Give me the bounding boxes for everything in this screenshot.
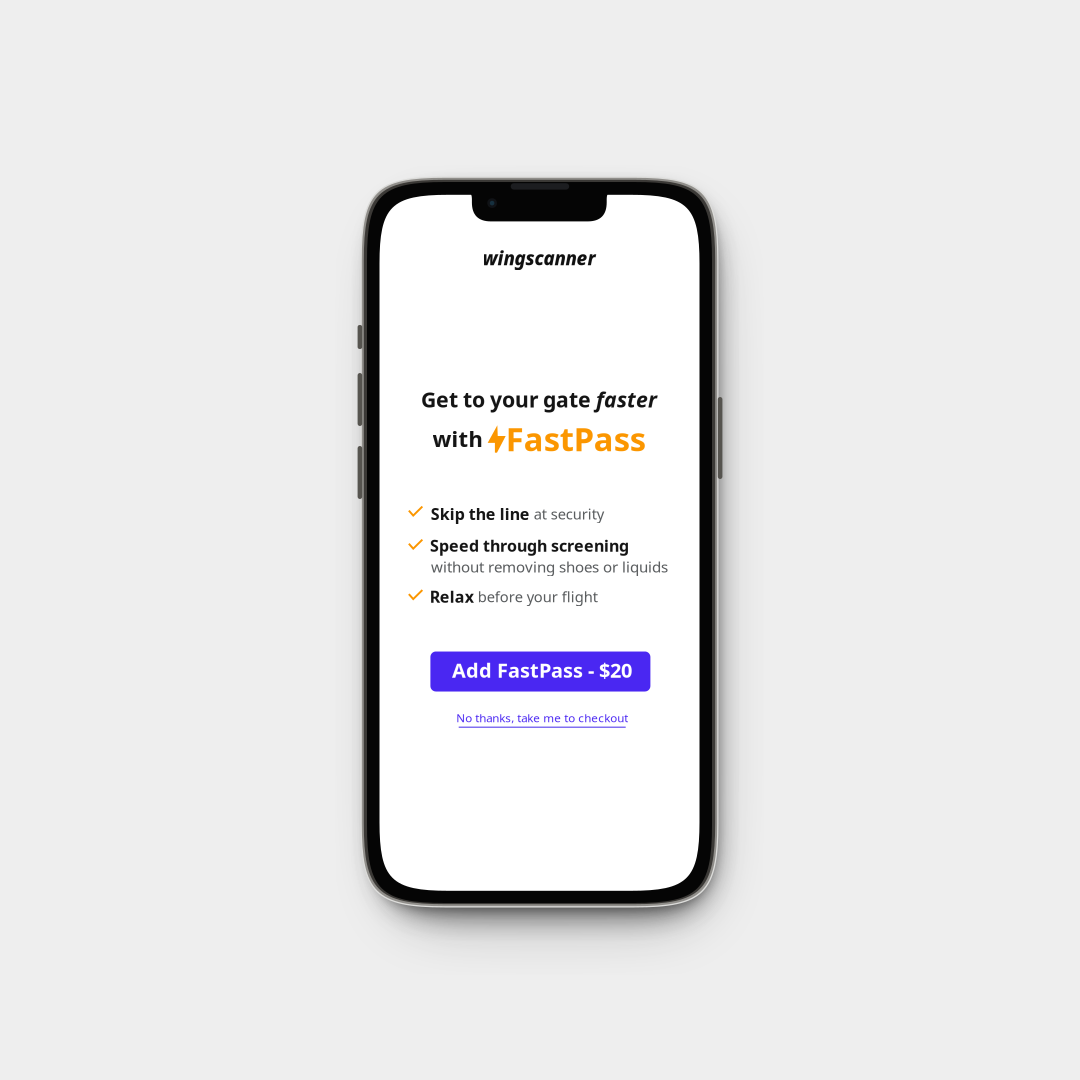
staticText: with bbox=[433, 423, 483, 453]
staticText: Get to your gate bbox=[421, 385, 596, 414]
staticText: Add FastPass - $20 bbox=[452, 656, 632, 684]
staticText: before your flight bbox=[474, 586, 598, 606]
staticText: No thanks, take me to checkout bbox=[456, 710, 628, 726]
button[interactable]: No thanks, take me to checkout bbox=[456, 710, 628, 728]
staticText: faster bbox=[596, 385, 657, 414]
staticText: at security bbox=[530, 504, 604, 524]
staticText: wingscanner bbox=[482, 245, 595, 271]
button[interactable]: Add FastPass - $20 bbox=[430, 651, 650, 691]
staticText: Relax bbox=[430, 586, 474, 607]
staticText: without removing shoes or liquids bbox=[431, 556, 668, 577]
staticText: Speed through screening bbox=[430, 535, 629, 556]
staticText: FastPass bbox=[506, 416, 646, 461]
staticText: Skip the line bbox=[431, 503, 530, 525]
